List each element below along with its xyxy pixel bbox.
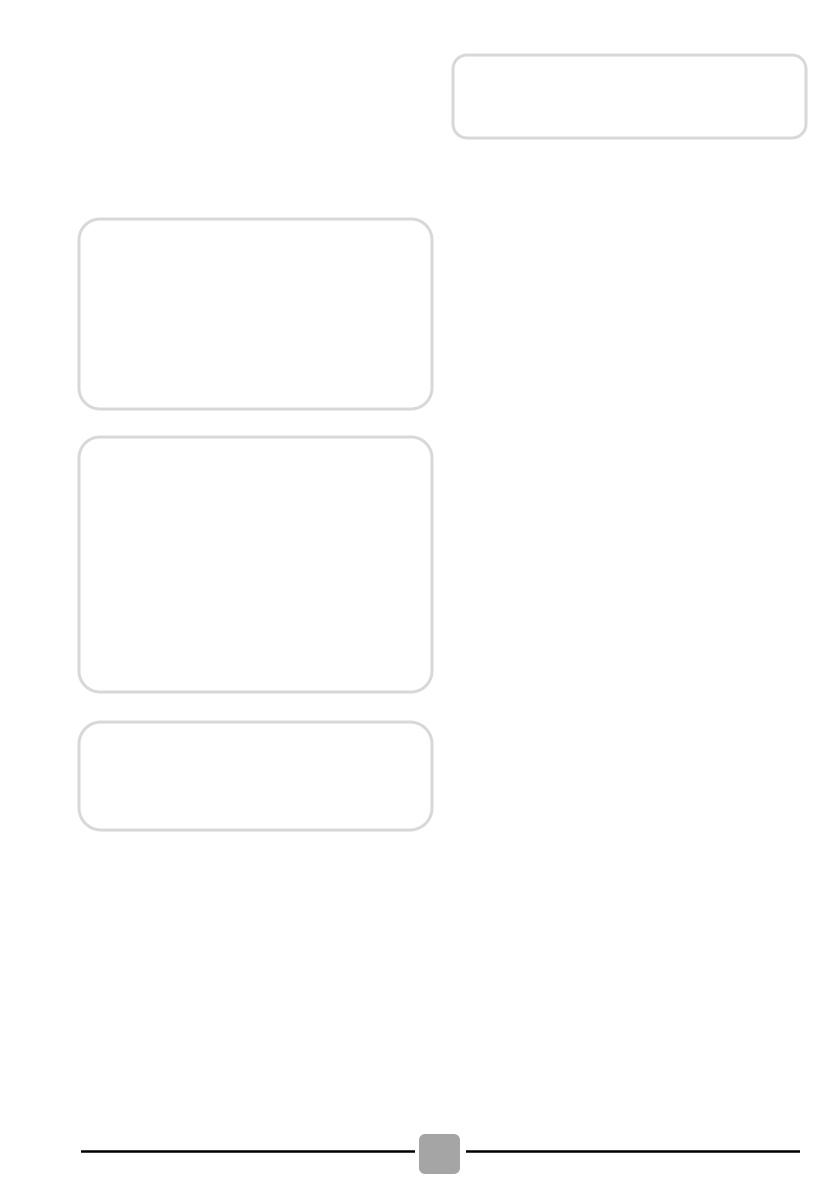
button[interactable]: Stop [419, 1134, 460, 1174]
button[interactable] [79, 722, 432, 830]
button[interactable] [79, 437, 432, 692]
button[interactable] [79, 219, 432, 409]
button[interactable] [453, 55, 806, 138]
